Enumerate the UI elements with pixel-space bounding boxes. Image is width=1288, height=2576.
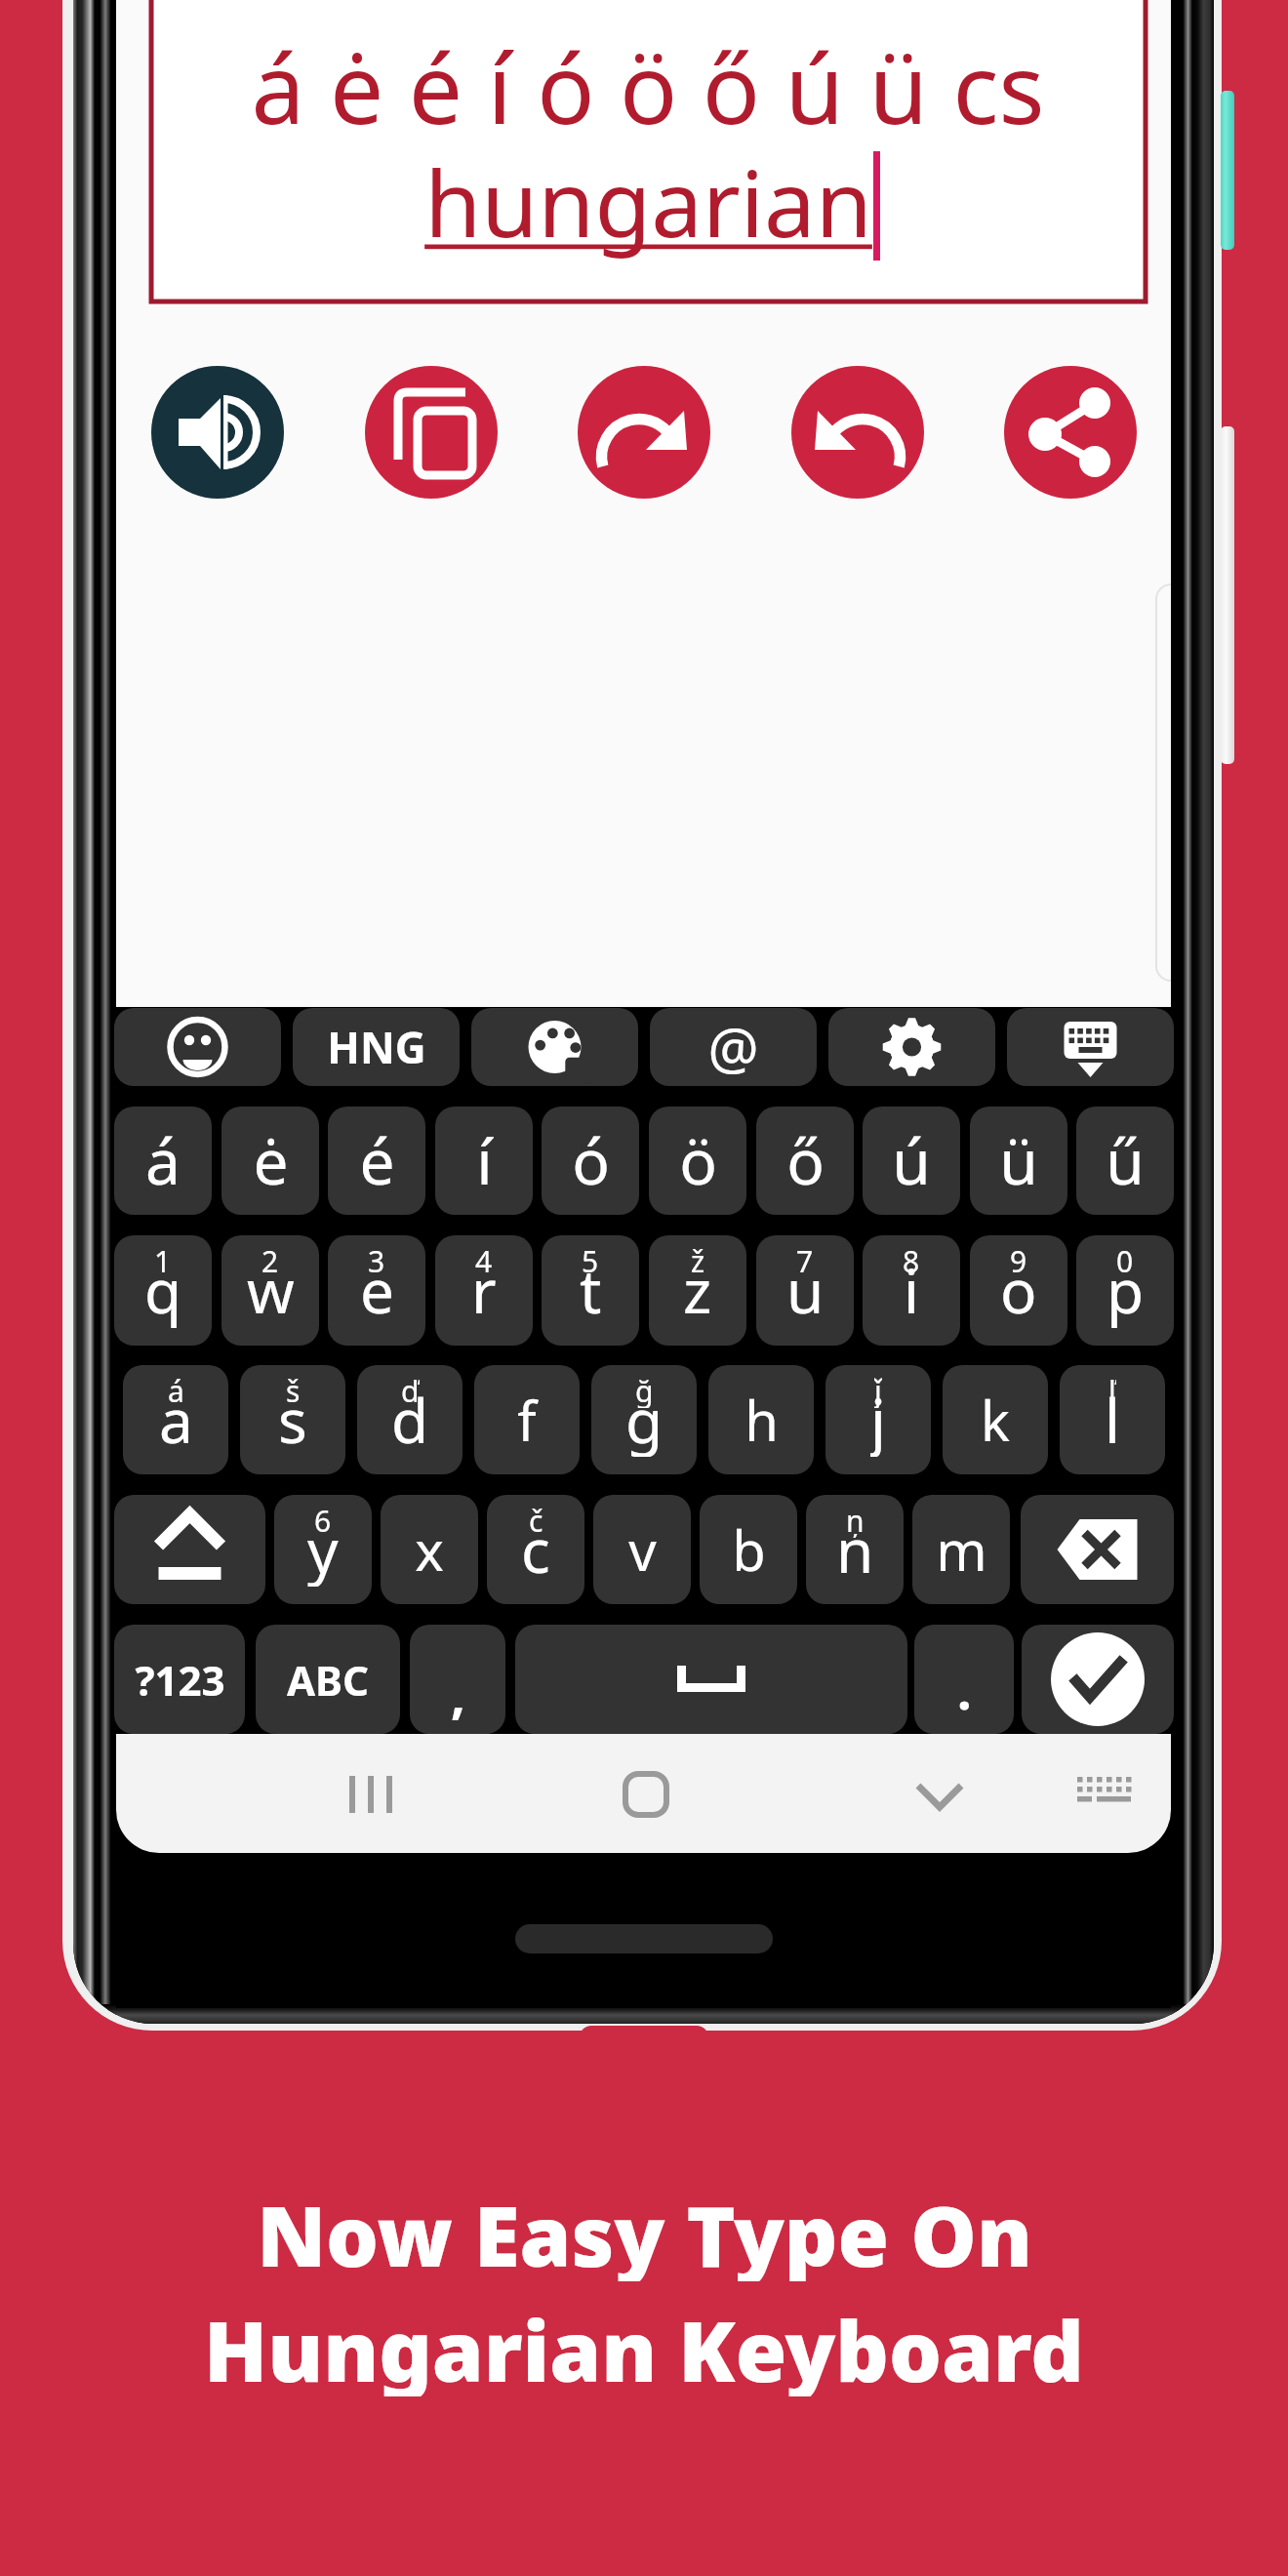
button[interactable]: d bbox=[357, 1379, 463, 1457]
button[interactable]: Settings bbox=[828, 1008, 995, 1086]
button[interactable]: Home bbox=[601, 1748, 695, 1841]
button[interactable]: w bbox=[221, 1249, 319, 1328]
button[interactable]: i bbox=[863, 1249, 960, 1328]
button[interactable] bbox=[274, 1495, 372, 1604]
button[interactable]: ABC bbox=[256, 1625, 400, 1734]
button[interactable]: ü bbox=[970, 1107, 1067, 1215]
button[interactable] bbox=[435, 1235, 533, 1346]
button[interactable]: r bbox=[435, 1249, 533, 1328]
button[interactable]: n bbox=[806, 1509, 904, 1587]
button[interactable] bbox=[114, 1235, 212, 1346]
button[interactable]: Recent apps bbox=[307, 1748, 401, 1841]
button[interactable]: Redo bbox=[578, 366, 710, 499]
button[interactable] bbox=[410, 1625, 505, 1734]
button[interactable] bbox=[435, 1107, 533, 1215]
button[interactable] bbox=[487, 1495, 584, 1604]
button[interactable] bbox=[123, 1365, 228, 1474]
button[interactable]: Switch keyboard bbox=[1060, 1748, 1153, 1841]
button[interactable]: o bbox=[970, 1249, 1067, 1328]
button[interactable]: á bbox=[114, 1107, 212, 1215]
button[interactable]: x bbox=[381, 1495, 478, 1604]
button[interactable] bbox=[912, 1495, 1010, 1604]
button[interactable] bbox=[221, 1107, 319, 1215]
button[interactable] bbox=[1076, 1107, 1174, 1215]
button[interactable]: v bbox=[593, 1495, 691, 1604]
button[interactable] bbox=[700, 1495, 797, 1604]
button[interactable]: k bbox=[943, 1365, 1048, 1474]
button[interactable] bbox=[649, 1107, 746, 1215]
button[interactable]: f bbox=[474, 1365, 580, 1474]
button[interactable] bbox=[114, 1625, 245, 1734]
button[interactable]: At sign bbox=[650, 1008, 817, 1086]
button[interactable]: ű bbox=[1076, 1107, 1174, 1215]
button[interactable]: e bbox=[328, 1249, 425, 1328]
button[interactable] bbox=[381, 1495, 478, 1604]
button[interactable]: Hide keyboard bbox=[1007, 1008, 1174, 1086]
button[interactable] bbox=[542, 1107, 639, 1215]
button[interactable] bbox=[256, 1625, 400, 1734]
button[interactable] bbox=[1060, 1365, 1165, 1474]
button[interactable] bbox=[114, 1107, 212, 1215]
button[interactable]: í bbox=[435, 1107, 533, 1215]
button[interactable] bbox=[806, 1495, 904, 1604]
button[interactable] bbox=[328, 1235, 425, 1346]
button[interactable] bbox=[593, 1495, 691, 1604]
button[interactable]: p bbox=[1076, 1249, 1174, 1328]
button[interactable] bbox=[240, 1365, 345, 1474]
button[interactable]: ė bbox=[221, 1107, 319, 1215]
button[interactable]: t bbox=[542, 1249, 639, 1328]
button[interactable]: Backspace bbox=[1021, 1495, 1174, 1604]
button[interactable] bbox=[756, 1235, 854, 1346]
button[interactable]: Undo bbox=[791, 366, 924, 499]
button[interactable]: c bbox=[487, 1509, 584, 1587]
button[interactable]: Enter bbox=[1022, 1625, 1174, 1734]
button[interactable]: y bbox=[274, 1509, 372, 1587]
button[interactable] bbox=[474, 1365, 580, 1474]
button[interactable]: ú bbox=[863, 1107, 960, 1215]
button[interactable]: g bbox=[591, 1379, 697, 1457]
button[interactable]: Share bbox=[1004, 366, 1137, 499]
button[interactable]: h bbox=[708, 1365, 814, 1474]
button[interactable]: Text input field bbox=[151, 0, 1146, 302]
button[interactable] bbox=[863, 1107, 960, 1215]
button[interactable]: Speak bbox=[151, 366, 284, 499]
button[interactable] bbox=[328, 1107, 425, 1215]
button[interactable]: q bbox=[114, 1249, 212, 1328]
button[interactable] bbox=[970, 1235, 1067, 1346]
button[interactable]: s bbox=[240, 1379, 345, 1457]
button[interactable] bbox=[943, 1365, 1048, 1474]
button[interactable] bbox=[649, 1235, 746, 1346]
button[interactable]: HNG bbox=[293, 1008, 460, 1086]
button[interactable] bbox=[1076, 1235, 1174, 1346]
button[interactable] bbox=[970, 1107, 1067, 1215]
button[interactable]: @ bbox=[650, 1008, 817, 1086]
button[interactable]: Space bbox=[515, 1625, 907, 1734]
button[interactable]: Hide keyboard bbox=[895, 1748, 988, 1841]
button[interactable]: a bbox=[123, 1379, 228, 1457]
button[interactable]: ö bbox=[649, 1107, 746, 1215]
button[interactable]: ó bbox=[542, 1107, 639, 1215]
button[interactable]: Emoji bbox=[114, 1008, 281, 1086]
button[interactable] bbox=[542, 1235, 639, 1346]
button[interactable]: b bbox=[700, 1495, 797, 1604]
button[interactable] bbox=[357, 1365, 463, 1474]
button[interactable]: é bbox=[328, 1107, 425, 1215]
button[interactable] bbox=[863, 1235, 960, 1346]
button[interactable] bbox=[825, 1365, 931, 1474]
button[interactable]: Language bbox=[293, 1008, 460, 1086]
button[interactable] bbox=[756, 1107, 854, 1215]
button[interactable]: l bbox=[1060, 1379, 1165, 1457]
button[interactable] bbox=[914, 1625, 1014, 1734]
button[interactable]: Theme bbox=[471, 1008, 638, 1086]
button[interactable] bbox=[708, 1365, 814, 1474]
button[interactable]: ő bbox=[756, 1107, 854, 1215]
button[interactable]: j bbox=[825, 1379, 931, 1457]
button[interactable]: m bbox=[912, 1495, 1010, 1604]
button[interactable]: Shift bbox=[114, 1495, 265, 1604]
button[interactable]: Copy bbox=[365, 366, 498, 499]
button[interactable]: ?123 bbox=[114, 1625, 245, 1734]
button[interactable]: u bbox=[756, 1249, 854, 1328]
button[interactable] bbox=[591, 1365, 697, 1474]
button[interactable] bbox=[221, 1235, 319, 1346]
button[interactable]: z bbox=[649, 1249, 746, 1328]
